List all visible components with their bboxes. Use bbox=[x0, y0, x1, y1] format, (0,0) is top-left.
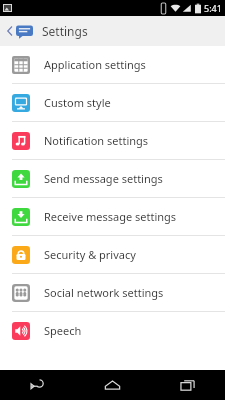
staticText: Application settings bbox=[44, 57, 146, 72]
button[interactable]: Send message settings bbox=[0, 160, 225, 197]
staticText: Social network settings bbox=[44, 285, 164, 300]
staticText: Security & privacy bbox=[44, 247, 136, 262]
staticText: Notification settings bbox=[44, 133, 149, 148]
button[interactable]: Home bbox=[75, 370, 150, 400]
staticText: 5:41 bbox=[204, 2, 222, 14]
button[interactable]: Social network settings bbox=[0, 274, 225, 311]
button[interactable]: Back bbox=[0, 370, 75, 400]
staticText: Receive message settings bbox=[44, 209, 177, 224]
staticText: Settings bbox=[42, 23, 88, 39]
button[interactable]: Notification settings bbox=[0, 122, 225, 159]
staticText: Custom style bbox=[44, 95, 111, 110]
button[interactable]: Settings bbox=[0, 16, 225, 46]
button[interactable]: Custom style bbox=[0, 84, 225, 121]
staticText: Send message settings bbox=[44, 171, 163, 186]
button[interactable]: Receive message settings bbox=[0, 198, 225, 235]
button[interactable]: Speech bbox=[0, 312, 225, 349]
button[interactable]: Recents bbox=[150, 370, 225, 400]
staticText: Speech bbox=[44, 323, 82, 338]
button[interactable]: Security & privacy bbox=[0, 236, 225, 273]
button[interactable]: Application settings bbox=[0, 46, 225, 83]
